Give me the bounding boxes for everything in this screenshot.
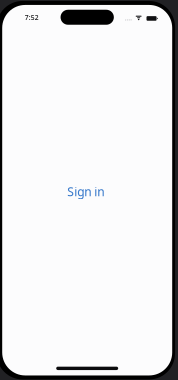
- staticText: Sign in: [67, 184, 104, 200]
- button[interactable]: Sign in: [61, 180, 110, 204]
- staticText: 7:52: [25, 13, 39, 22]
